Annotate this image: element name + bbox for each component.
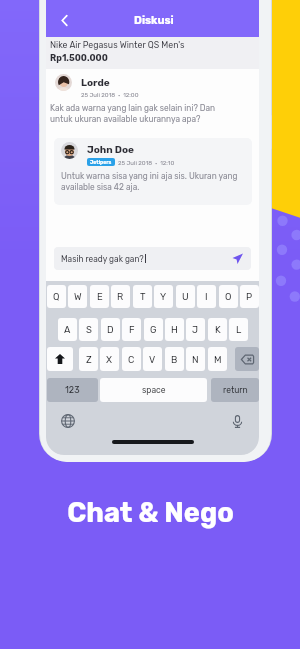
staticText: G xyxy=(150,324,157,335)
staticText: Q xyxy=(53,291,60,302)
button[interactable]: D xyxy=(101,318,120,341)
staticText: Y xyxy=(160,291,167,302)
button[interactable]: Lorde xyxy=(50,74,255,124)
button[interactable]: return xyxy=(211,378,259,402)
button[interactable]: Backspace xyxy=(235,347,259,371)
staticText: Untuk warna sisa yang ini aja sis. Ukura… xyxy=(61,171,238,192)
button[interactable]: space xyxy=(100,378,207,402)
staticText: Rp1.500.000 xyxy=(50,53,108,64)
staticText: T xyxy=(140,291,146,302)
button[interactable]: Z xyxy=(79,347,98,371)
staticText: Diskusi xyxy=(134,14,174,27)
staticText: return xyxy=(223,385,248,395)
button[interactable]: Y xyxy=(154,285,173,308)
staticText: I xyxy=(205,291,208,302)
button[interactable]: Q xyxy=(47,285,66,308)
staticText: U xyxy=(182,291,189,302)
staticText: 123 xyxy=(65,385,80,396)
staticText: Z xyxy=(86,354,92,365)
button[interactable]: G xyxy=(144,318,163,341)
staticText: D xyxy=(107,324,114,335)
button[interactable]: L xyxy=(229,318,248,341)
staticText: Nike Air Pegasus Winter QS Men's xyxy=(50,40,185,50)
staticText: Lorde xyxy=(81,77,110,89)
button[interactable]: Shift xyxy=(47,347,73,371)
staticText: Masih ready gak gan? xyxy=(61,254,144,264)
staticText: K xyxy=(215,324,221,335)
button[interactable]: Masih ready gak gan? xyxy=(54,247,251,270)
button[interactable]: Voice input xyxy=(228,412,246,430)
staticText: Chat & Nego xyxy=(67,497,234,529)
staticText: B xyxy=(171,354,178,365)
staticText: O xyxy=(225,291,232,302)
button[interactable]: W xyxy=(68,285,87,308)
button[interactable]: A xyxy=(58,318,77,341)
staticText: F xyxy=(129,324,135,335)
button[interactable]: B xyxy=(165,347,184,371)
button[interactable]: U xyxy=(176,285,195,308)
button[interactable]: N xyxy=(186,347,205,371)
staticText: space xyxy=(142,385,166,395)
staticText: C xyxy=(128,354,135,365)
staticText: S xyxy=(86,324,92,335)
button[interactable]: S xyxy=(79,318,98,341)
button[interactable]: O xyxy=(219,285,238,308)
staticText: Kak ada warna yang lain gak selain ini? … xyxy=(50,103,216,124)
button[interactable]: K xyxy=(208,318,227,341)
staticText: Jetipers xyxy=(90,159,112,165)
button[interactable]: M xyxy=(208,347,227,371)
staticText: John Doe xyxy=(87,144,135,156)
staticText: X xyxy=(106,354,113,365)
staticText: V xyxy=(149,354,156,365)
button[interactable]: V xyxy=(143,347,162,371)
staticText: P xyxy=(246,291,253,302)
button[interactable]: John Doe xyxy=(54,138,252,205)
staticText: H xyxy=(171,324,178,335)
staticText: R xyxy=(117,291,124,302)
staticText: L xyxy=(236,324,242,335)
staticText: 25 Juli 2018 • 12:00 xyxy=(81,91,139,98)
button[interactable]: R xyxy=(111,285,130,308)
button[interactable]: H xyxy=(165,318,184,341)
staticText: W xyxy=(74,291,82,302)
button[interactable]: Change keyboard xyxy=(59,412,77,430)
button[interactable]: F xyxy=(122,318,141,341)
button[interactable]: T xyxy=(133,285,152,308)
button[interactable]: 123 xyxy=(47,378,98,402)
staticText: N xyxy=(192,354,199,365)
button[interactable]: I xyxy=(197,285,216,308)
staticText: J xyxy=(192,324,199,335)
staticText: 25 Juli 2018 • 12:10 xyxy=(118,159,175,166)
button[interactable]: Back xyxy=(54,10,74,30)
button[interactable]: C xyxy=(122,347,141,371)
button[interactable]: J xyxy=(186,318,205,341)
staticText: M xyxy=(214,354,222,365)
button[interactable]: X xyxy=(100,347,119,371)
button[interactable]: E xyxy=(90,285,109,308)
staticText: A xyxy=(64,324,71,335)
button[interactable]: P xyxy=(240,285,259,308)
staticText: E xyxy=(97,291,103,302)
